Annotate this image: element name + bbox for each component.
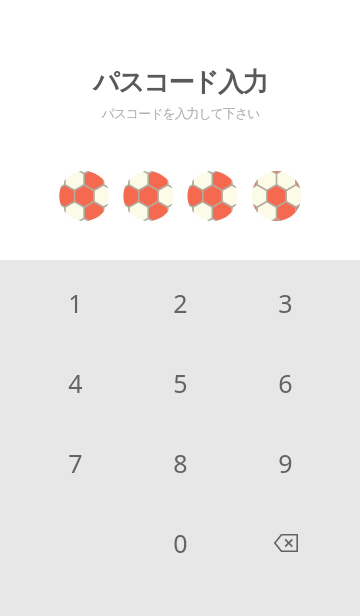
- button[interactable]: 8: [128, 423, 233, 503]
- staticText: 8: [173, 446, 188, 480]
- button[interactable]: 7: [22, 423, 128, 503]
- staticText: 7: [68, 446, 83, 480]
- button[interactable]: 3: [233, 263, 338, 343]
- button[interactable]: 5: [128, 343, 233, 423]
- staticText: 3: [278, 286, 293, 320]
- button[interactable]: 6: [233, 343, 338, 423]
- staticText: パスコードを入力して下さい: [101, 106, 260, 122]
- staticText: 4: [68, 366, 83, 400]
- staticText: 1: [68, 286, 83, 320]
- button[interactable]: Delete: [233, 503, 338, 583]
- staticText: 5: [173, 366, 188, 400]
- button[interactable]: 4: [22, 343, 128, 423]
- staticText: 9: [278, 446, 293, 480]
- button[interactable]: 2: [128, 263, 233, 343]
- button[interactable]: 0: [128, 503, 233, 583]
- button[interactable]: 1: [22, 263, 128, 343]
- staticText: 2: [173, 286, 188, 320]
- staticText: パスコード入力: [93, 66, 267, 99]
- button[interactable]: 9: [233, 423, 338, 503]
- staticText: 6: [278, 366, 293, 400]
- staticText: 0: [173, 526, 188, 560]
